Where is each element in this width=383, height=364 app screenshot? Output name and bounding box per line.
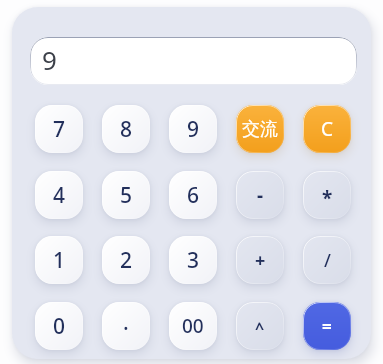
staticText: . xyxy=(123,308,129,337)
staticText: 交流 xyxy=(242,118,278,141)
staticText: / xyxy=(324,248,331,273)
button[interactable]: - xyxy=(236,171,284,219)
button[interactable]: + xyxy=(236,236,284,284)
staticText: = xyxy=(322,315,332,338)
staticText: 7 xyxy=(53,115,66,144)
staticText: C xyxy=(321,116,334,142)
button[interactable]: 8 xyxy=(102,105,150,153)
staticText: 9 xyxy=(187,115,200,144)
staticText: * xyxy=(322,185,333,211)
button[interactable]: 0 xyxy=(35,302,83,350)
button[interactable]: 00 xyxy=(169,302,217,350)
staticText: 3 xyxy=(187,246,200,275)
button[interactable]: C xyxy=(303,105,351,153)
button[interactable]: . xyxy=(102,302,150,350)
button[interactable]: 2 xyxy=(102,236,150,284)
staticText: + xyxy=(255,248,266,273)
staticText: 2 xyxy=(120,246,133,275)
button[interactable]: ^ xyxy=(236,302,284,350)
staticText: 6 xyxy=(187,181,200,210)
button[interactable]: 7 xyxy=(35,105,83,153)
button[interactable]: 6 xyxy=(169,171,217,219)
staticText: 9 xyxy=(42,42,57,77)
button[interactable]: 4 xyxy=(35,171,83,219)
staticText: 1 xyxy=(53,246,66,275)
staticText: - xyxy=(257,182,264,208)
staticText: 5 xyxy=(120,181,133,210)
button[interactable]: * xyxy=(303,171,351,219)
button[interactable]: 5 xyxy=(102,171,150,219)
staticText: 8 xyxy=(120,115,133,144)
button[interactable]: 3 xyxy=(169,236,217,284)
button[interactable]: / xyxy=(303,236,351,284)
button[interactable]: 9 xyxy=(169,105,217,153)
staticText: 00 xyxy=(182,313,204,339)
staticText: ^ xyxy=(255,317,265,339)
staticText: 4 xyxy=(53,181,66,210)
staticText: 0 xyxy=(53,312,66,341)
button[interactable]: = xyxy=(303,302,351,350)
button[interactable]: 1 xyxy=(35,236,83,284)
button[interactable]: 交流 xyxy=(236,105,284,153)
